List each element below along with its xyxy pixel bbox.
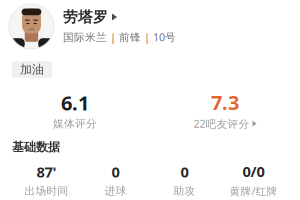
staticText: 22吧友评分	[193, 117, 249, 131]
staticText: 加油	[20, 62, 44, 77]
staticText: 0	[180, 162, 188, 181]
button[interactable]: 加油	[12, 61, 52, 78]
staticText: 0/0	[242, 161, 264, 181]
staticText: 劳塔罗	[63, 8, 108, 26]
staticText: 媒体评分	[53, 117, 97, 130]
staticText: 黄牌/红牌	[229, 184, 277, 198]
staticText: 进球	[104, 184, 126, 198]
staticText: 国际米兰 | 前锋 | 10号	[63, 30, 176, 44]
staticText: 6.1	[61, 89, 89, 116]
staticText: 87'	[36, 162, 56, 181]
staticText: 基础数据	[12, 140, 60, 154]
staticText: 7.3	[211, 89, 239, 116]
staticText: 0	[111, 162, 119, 181]
staticText: 助攻	[173, 184, 195, 198]
button[interactable]: 劳塔罗	[0, 4, 300, 49]
staticText: 出场时间	[24, 184, 68, 198]
button[interactable]: 7.3	[150, 89, 300, 131]
